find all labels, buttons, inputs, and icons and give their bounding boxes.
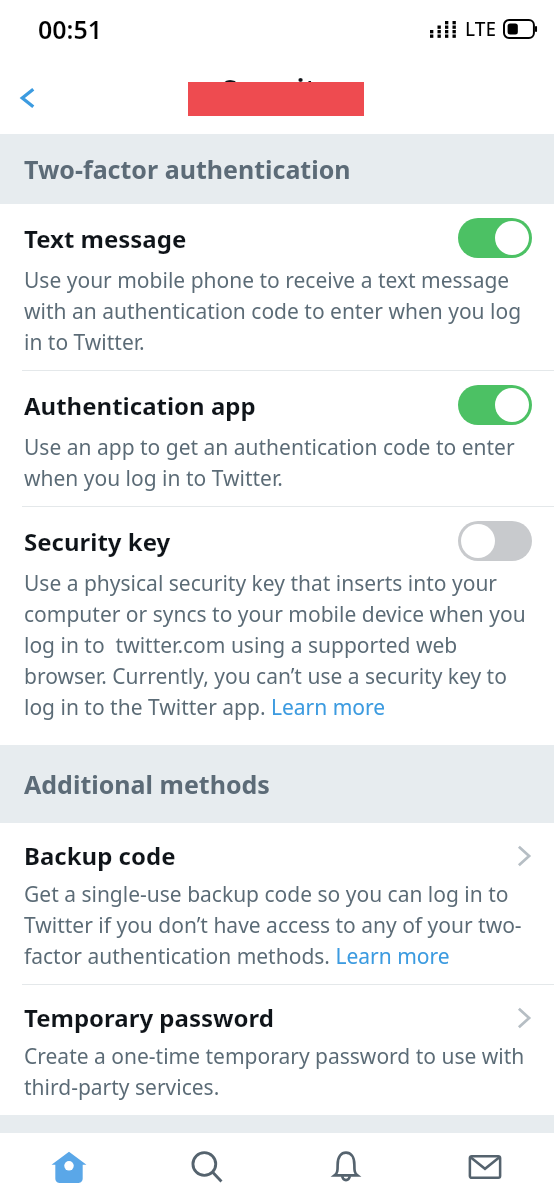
button[interactable]: Off <box>458 521 532 561</box>
staticText: LTE <box>465 16 497 42</box>
staticText: Create a one-time temporary password to … <box>24 1042 532 1101</box>
button[interactable]: Text message <box>0 204 554 370</box>
staticText: Security key <box>24 525 458 558</box>
button[interactable]: Home <box>0 1133 138 1200</box>
button[interactable]: Search <box>138 1133 276 1200</box>
button[interactable]: On <box>458 218 532 258</box>
staticText: Use a physical security key that inserts… <box>24 569 532 721</box>
staticText: Security <box>222 70 332 107</box>
button[interactable]: Back <box>0 70 56 126</box>
staticText: Additional methods <box>24 767 270 801</box>
staticText: Use an app to get an authentication code… <box>24 433 532 492</box>
button[interactable]: Notifications <box>276 1133 415 1200</box>
staticText: Temporary password <box>24 1001 516 1034</box>
staticText: 00:51 <box>38 12 103 46</box>
staticText: Use your mobile phone to receive a text … <box>24 266 532 356</box>
button[interactable]: Security key <box>0 507 554 735</box>
button[interactable]: Backup code <box>0 823 554 984</box>
staticText: Text message <box>24 222 458 255</box>
staticText: Authentication app <box>24 389 458 422</box>
staticText: Two-factor authentication <box>24 152 351 186</box>
button[interactable]: Messages <box>415 1133 554 1200</box>
button[interactable]: On <box>458 385 532 425</box>
staticText: Backup code <box>24 839 516 872</box>
button[interactable]: Temporary password <box>0 985 554 1115</box>
staticText: Get a single-use backup code so you can … <box>24 880 532 970</box>
button[interactable]: Authentication app <box>0 371 554 506</box>
